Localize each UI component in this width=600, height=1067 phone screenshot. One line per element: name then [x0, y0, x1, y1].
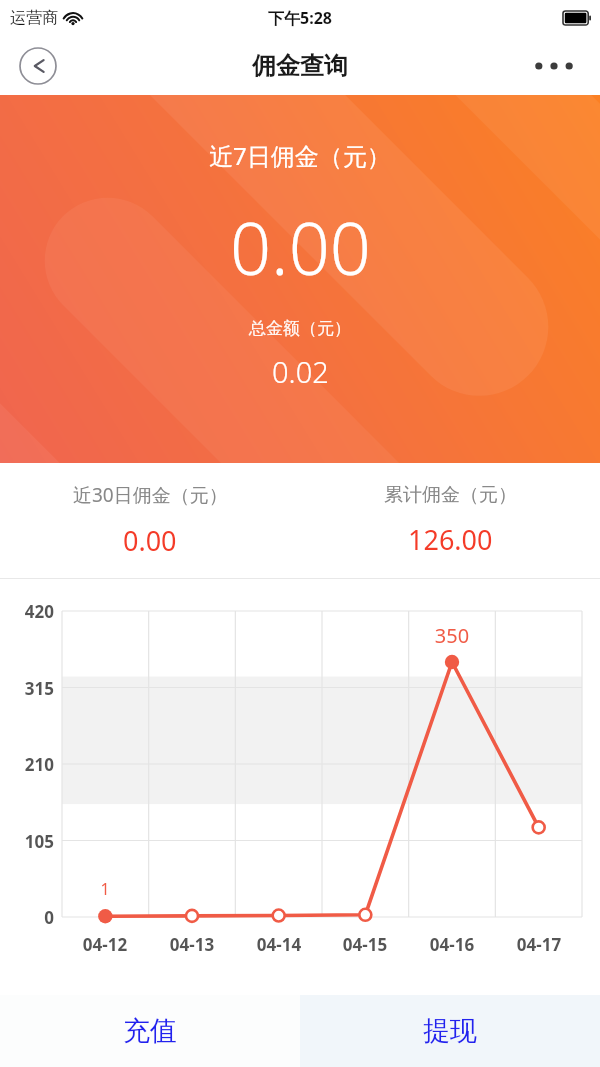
staticText: 总金额（元）	[249, 318, 351, 339]
staticText: 0.00	[123, 522, 177, 559]
staticText: 04-16	[408, 933, 496, 956]
staticText: 0	[8, 906, 54, 929]
staticText: 0.02	[272, 352, 329, 391]
staticText: 126.00	[408, 521, 493, 558]
staticText: 105	[8, 830, 54, 853]
staticText: 04-12	[61, 933, 149, 956]
staticText: 04-17	[495, 933, 583, 956]
button[interactable]: 近30日佣金（元）	[0, 463, 300, 578]
button[interactable]: 累计佣金（元）	[300, 463, 600, 578]
staticText: 佣金查询	[252, 51, 348, 81]
staticText: 04-14	[235, 933, 323, 956]
button[interactable]: 提现	[300, 995, 600, 1067]
staticText: 近7日佣金（元）	[209, 139, 391, 172]
staticText: 420	[8, 600, 54, 623]
staticText: 0.00	[230, 198, 371, 296]
staticText: 04-13	[148, 933, 236, 956]
staticText: 近30日佣金（元）	[73, 482, 228, 508]
staticText: 充值	[123, 1014, 177, 1048]
staticText: 1	[75, 878, 135, 900]
staticText: 210	[8, 753, 54, 776]
staticText: 315	[8, 677, 54, 700]
button[interactable]: Back	[19, 47, 57, 85]
staticText: 下午5:28	[268, 7, 332, 29]
staticText: 运营商	[10, 8, 58, 28]
staticText: 04-15	[321, 933, 409, 956]
button[interactable]: 充值	[0, 995, 300, 1067]
button[interactable]: More options	[526, 46, 582, 86]
staticText: 350	[412, 622, 492, 649]
staticText: 提现	[423, 1014, 477, 1048]
staticText: 累计佣金（元）	[384, 483, 517, 507]
